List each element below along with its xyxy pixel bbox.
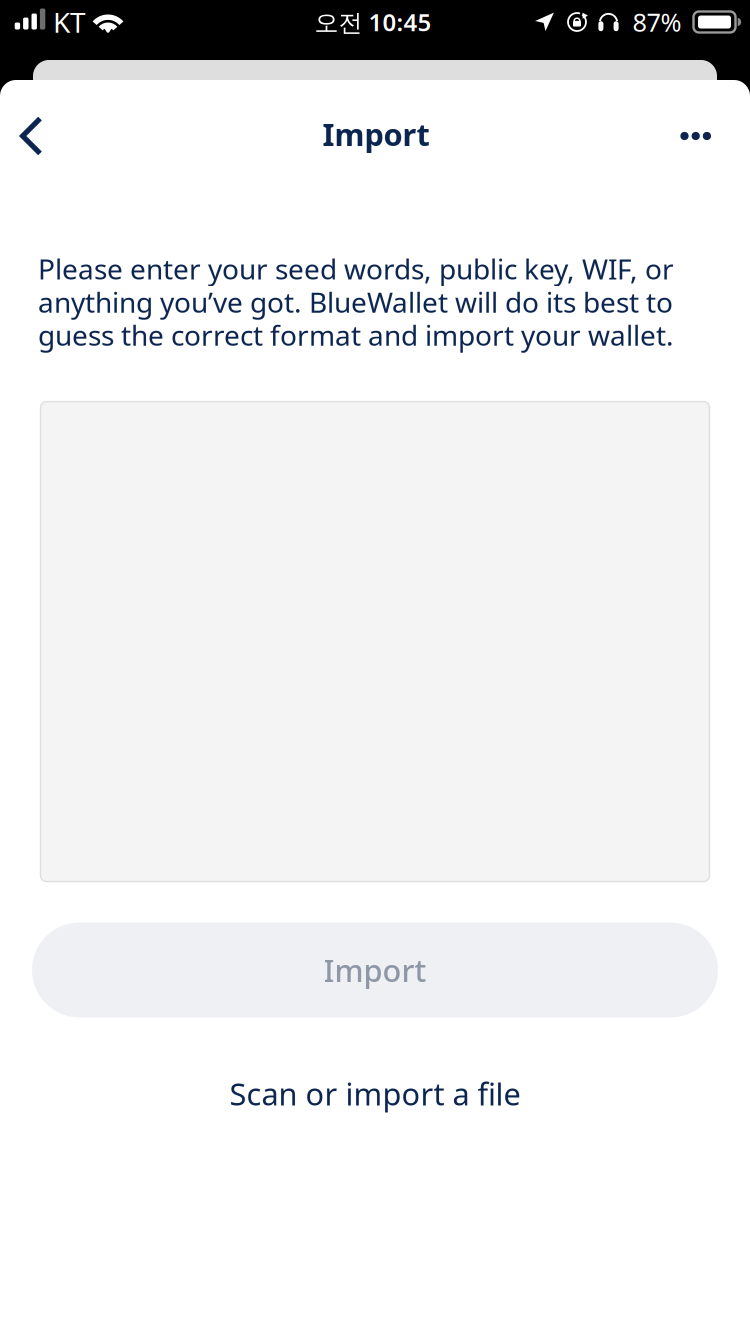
- staticText: Import: [322, 114, 429, 154]
- button[interactable]: Import: [32, 922, 718, 1017]
- staticText: Please enter your seed words, public key…: [38, 250, 674, 353]
- button[interactable]: Scan or import a file: [145, 1065, 605, 1121]
- staticText: 87%: [632, 5, 681, 39]
- staticText: 오전 10:45: [314, 6, 431, 38]
- staticText: Import: [323, 950, 426, 990]
- button[interactable]: More options: [647, 106, 750, 166]
- staticText: KT: [53, 3, 86, 41]
- button[interactable]: Back: [0, 106, 76, 166]
- staticText: Scan or import a file: [229, 1073, 520, 1114]
